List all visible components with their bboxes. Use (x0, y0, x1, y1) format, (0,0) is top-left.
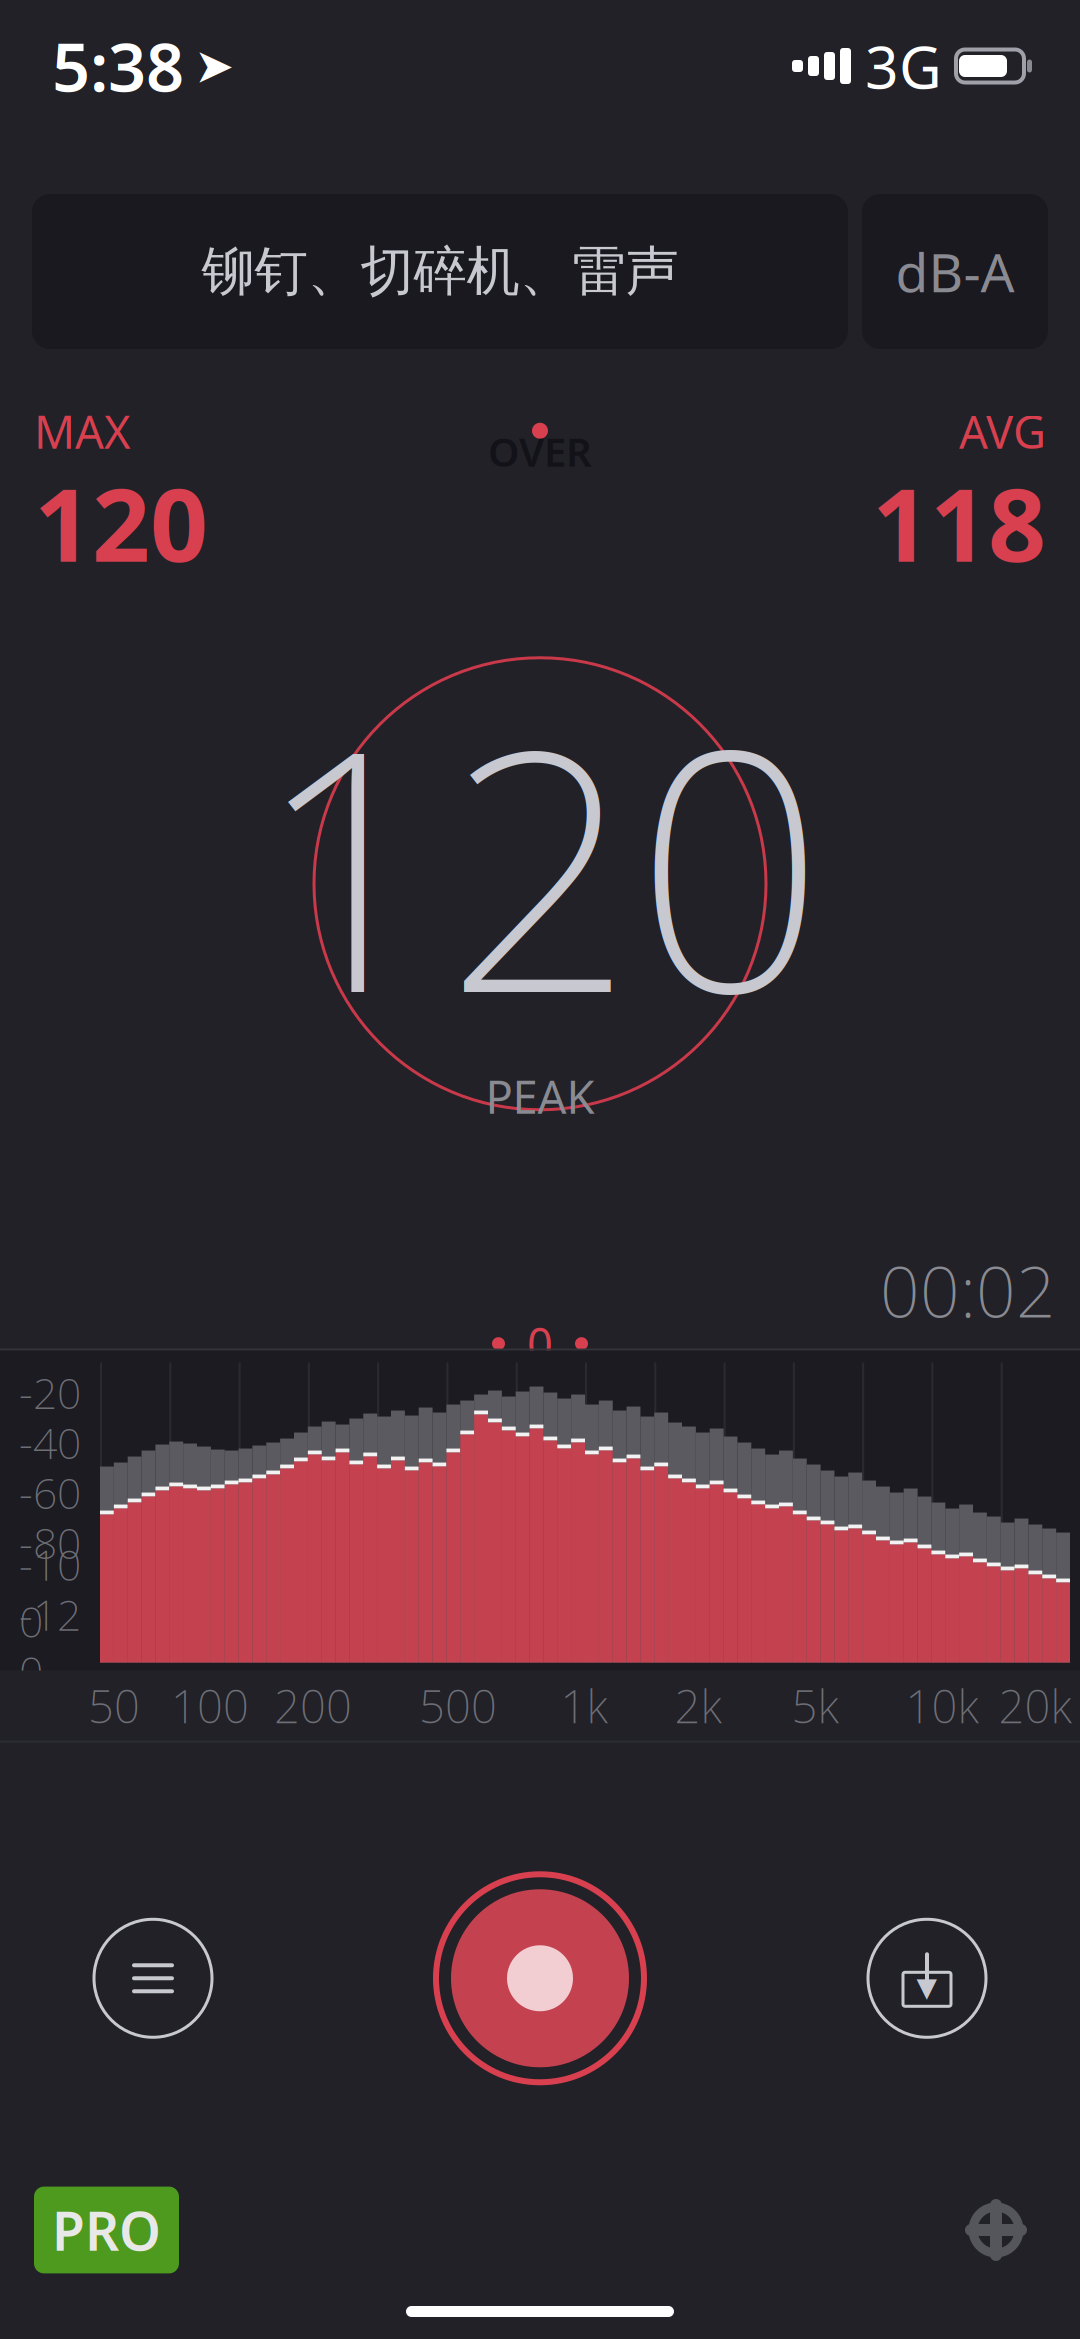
staticText: AVG (959, 401, 1046, 461)
button[interactable]: PRO (34, 2187, 179, 2273)
staticText: 5k (791, 1675, 838, 1736)
staticText: OVER (488, 425, 592, 478)
staticText: -120 (19, 1586, 81, 1699)
staticText: 120 (34, 455, 208, 590)
staticText: -80 (19, 1514, 81, 1571)
staticText: 50 (88, 1675, 140, 1736)
staticText: PRO (52, 2195, 161, 2265)
staticText: -100 (19, 1536, 81, 1649)
staticText: 10k (905, 1675, 978, 1736)
button[interactable]: Settings (950, 2184, 1042, 2276)
staticText: 铆钉、切碎机、雷声 (201, 239, 678, 304)
staticText: 00:02 (880, 1244, 1056, 1337)
staticText: 5:38 (52, 22, 184, 110)
staticText: 200 (274, 1675, 352, 1736)
staticText: dB-A (895, 236, 1014, 307)
staticText: 1k (560, 1675, 607, 1736)
button[interactable]: dB-A (862, 194, 1048, 349)
staticText: 100 (171, 1675, 249, 1736)
staticText: -20 (19, 1364, 81, 1421)
staticText: 120 (255, 641, 825, 1084)
button[interactable]: Record (425, 1863, 655, 2093)
button[interactable]: 铆钉、切碎机、雷声 (32, 194, 848, 349)
staticText: -40 (19, 1414, 81, 1471)
staticText: MAX (34, 401, 131, 461)
staticText: 20k (998, 1675, 1071, 1736)
staticText: ➤ (194, 39, 234, 93)
button[interactable]: Measurement list (78, 1903, 228, 2053)
staticText: 118 (872, 455, 1046, 590)
staticText: -60 (19, 1464, 81, 1521)
staticText: PEAK (485, 1066, 594, 1126)
staticText: ▼ (916, 1972, 937, 2002)
staticText: 0 (527, 1314, 553, 1374)
staticText: 500 (419, 1675, 497, 1736)
staticText: 3G (865, 27, 942, 105)
button[interactable]: Save recording (852, 1903, 1002, 2053)
staticText: 2k (674, 1675, 721, 1736)
